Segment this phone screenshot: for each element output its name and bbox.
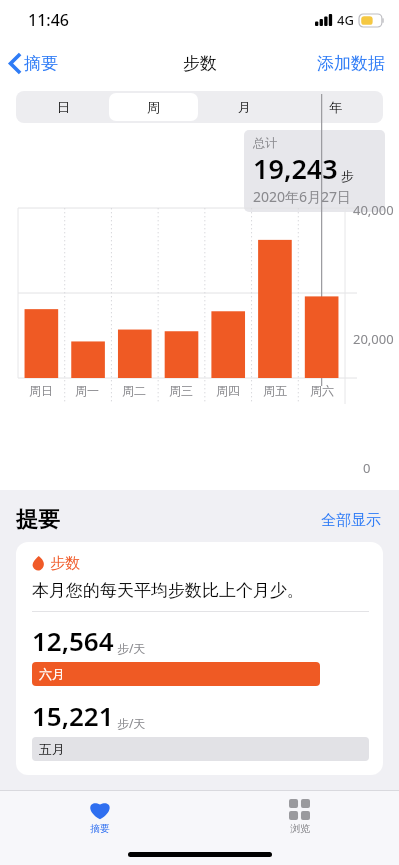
staticText: 步/天 — [117, 640, 146, 656]
staticText: 周四 — [216, 383, 240, 398]
staticText: 步 — [341, 168, 354, 184]
staticText: 周一 — [75, 383, 99, 398]
staticText: 年 — [329, 99, 342, 115]
button[interactable]: 步数 — [16, 542, 383, 775]
staticText: 摘要 — [90, 822, 110, 835]
staticText: 总计 — [253, 135, 277, 150]
button[interactable]: 周 — [109, 93, 198, 121]
staticText: 2020年6月27日 — [253, 187, 352, 206]
staticText: 步/天 — [117, 715, 146, 731]
staticText: 步数 — [50, 554, 80, 573]
staticText: 19,243 — [253, 150, 338, 187]
staticText: 周 — [147, 99, 160, 115]
button[interactable]: 全部显示 — [317, 507, 385, 534]
staticText: 40,000 — [353, 201, 394, 219]
staticText: 本月您的每天平均步数比上个月少。 — [32, 580, 304, 601]
button[interactable]: 月 — [200, 93, 289, 121]
staticText: 11:46 — [28, 9, 69, 31]
staticText: 4G — [337, 11, 354, 29]
staticText: 15,221 — [32, 698, 114, 733]
button[interactable]: 摘要 — [0, 49, 66, 78]
button[interactable]: 日 — [19, 93, 107, 121]
staticText: 周三 — [169, 383, 193, 398]
staticText: 摘要 — [24, 53, 58, 74]
staticText: 0 — [363, 459, 371, 477]
button[interactable]: 添加数据 — [303, 47, 399, 80]
staticText: 周二 — [122, 383, 146, 398]
staticText: 月 — [238, 99, 251, 115]
button[interactable]: 摘要 — [0, 791, 199, 843]
button[interactable]: 年 — [291, 93, 380, 121]
staticText: 周五 — [263, 383, 287, 398]
staticText: 提要 — [16, 506, 60, 534]
staticText: 六月 — [39, 666, 65, 682]
staticText: 周六 — [310, 383, 334, 398]
staticText: 五月 — [39, 741, 65, 757]
staticText: 浏览 — [290, 822, 310, 835]
staticText: 步数 — [183, 53, 217, 74]
staticText: 20,000 — [353, 330, 394, 348]
staticText: 日 — [57, 99, 70, 115]
staticText: 12,564 — [32, 623, 114, 658]
button[interactable]: 浏览 — [199, 791, 399, 843]
staticText: 周日 — [29, 383, 53, 398]
